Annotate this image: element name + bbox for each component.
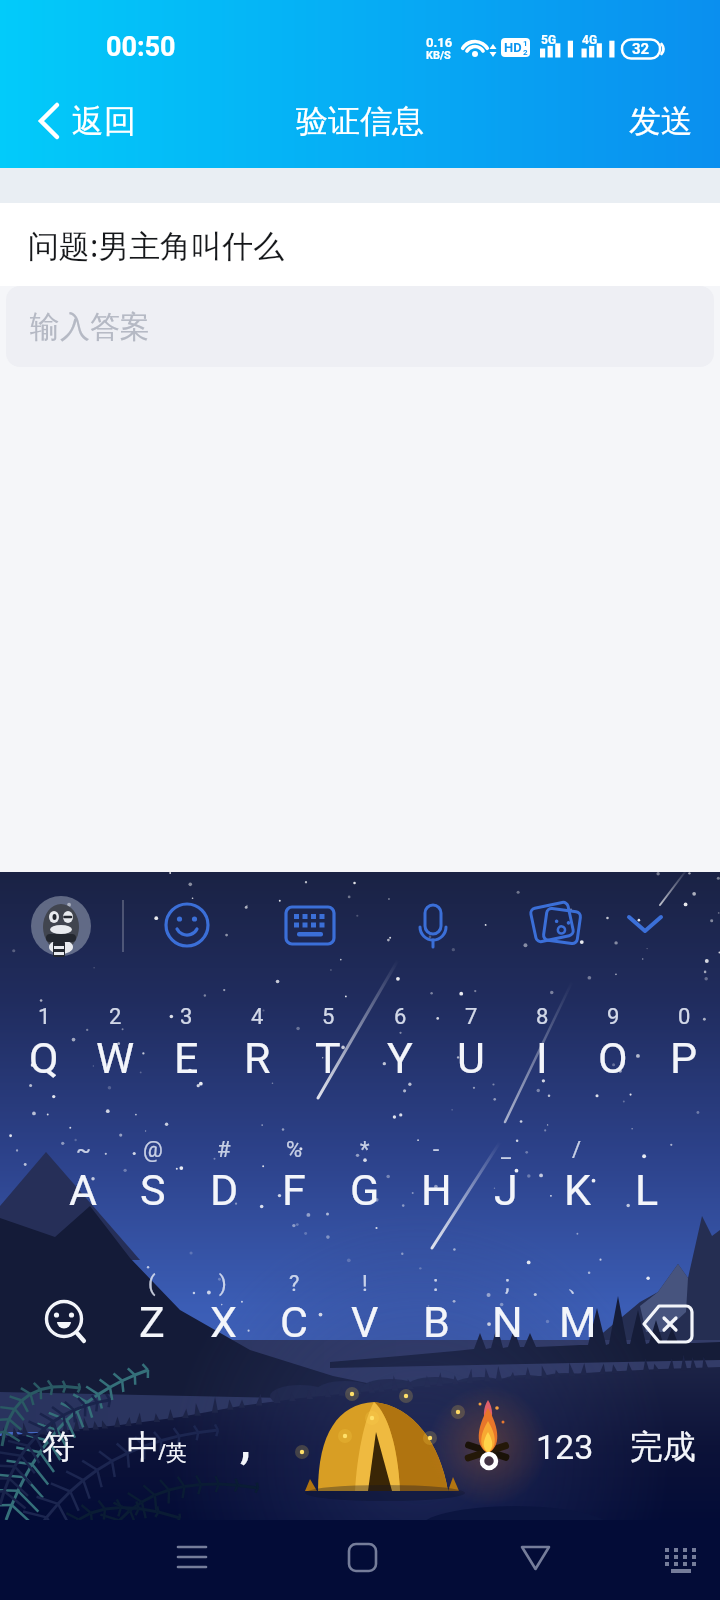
staticText: 3 [180, 1004, 193, 1030]
button[interactable] [26, 1288, 100, 1358]
button[interactable] [288, 1412, 518, 1484]
button[interactable]: F [259, 1154, 329, 1226]
staticText: 输入答案 [30, 308, 150, 346]
staticText: D [210, 1165, 239, 1215]
staticText: - [433, 1137, 440, 1163]
button[interactable]: O [578, 1022, 648, 1094]
button[interactable] [632, 1288, 706, 1358]
staticText: 7 [465, 1004, 478, 1030]
staticText: 5G [541, 33, 557, 47]
button[interactable] [28, 893, 94, 959]
button[interactable]: X [188, 1286, 258, 1358]
button[interactable]: D [189, 1154, 259, 1226]
button[interactable] [332, 1527, 392, 1587]
staticText: G [350, 1165, 380, 1215]
button[interactable]: H [401, 1154, 471, 1226]
staticText: Q [29, 1033, 59, 1083]
staticText: P [670, 1033, 698, 1083]
staticText: 0.16 [426, 35, 453, 50]
button[interactable] [612, 893, 678, 959]
button[interactable]: S [118, 1154, 188, 1226]
staticText: 1 [523, 39, 528, 48]
staticText: 00:50 [106, 31, 176, 63]
staticText: H [421, 1165, 452, 1215]
button[interactable]: 发送 [606, 93, 716, 149]
staticText: ; [505, 1271, 510, 1297]
staticText: 2 [109, 1004, 122, 1030]
button[interactable] [651, 1527, 711, 1587]
button[interactable]: 中 [113, 1411, 173, 1483]
button[interactable]: U [436, 1022, 506, 1094]
button[interactable] [154, 893, 220, 959]
staticText: 完成 [630, 1426, 696, 1468]
button[interactable]: /英 [150, 1416, 194, 1488]
staticText: X [210, 1297, 237, 1347]
staticText: _ [501, 1137, 511, 1163]
staticText: /英 [158, 1438, 187, 1467]
staticText: I [536, 1033, 548, 1083]
staticText: @ [143, 1137, 163, 1163]
staticText: W [96, 1033, 135, 1083]
button[interactable]: M [543, 1286, 613, 1358]
button[interactable]: K [542, 1154, 612, 1226]
button[interactable]: E [151, 1022, 221, 1094]
button[interactable]: P [649, 1022, 719, 1094]
button[interactable]: Q [9, 1022, 79, 1094]
button[interactable] [162, 1527, 222, 1587]
button[interactable]: Z [117, 1286, 187, 1358]
button[interactable]: A [48, 1154, 118, 1226]
button[interactable]: I [507, 1022, 577, 1094]
staticText: Z [139, 1297, 165, 1347]
staticText: # [217, 1137, 231, 1163]
button[interactable]: N [472, 1286, 542, 1358]
staticText: 返回 [72, 101, 136, 141]
button[interactable]: G [330, 1154, 400, 1226]
staticText: 、 [567, 1270, 589, 1298]
button[interactable] [277, 893, 343, 959]
staticText: O [598, 1033, 628, 1083]
staticText: 4 [251, 1004, 264, 1030]
staticText: , [240, 1413, 251, 1469]
button[interactable]: 123 [525, 1411, 605, 1483]
button[interactable]: , [213, 1405, 277, 1477]
button[interactable]: W [80, 1022, 150, 1094]
staticText: % [286, 1137, 303, 1163]
button[interactable] [524, 893, 590, 959]
staticText: B [423, 1297, 450, 1347]
button[interactable]: 输入答案 [6, 286, 714, 367]
staticText: HD [504, 40, 522, 55]
staticText: 5 [322, 1004, 335, 1030]
button[interactable]: L [612, 1154, 682, 1226]
staticText: 6 [394, 1004, 407, 1030]
button[interactable]: 完成 [620, 1411, 706, 1483]
staticText: L [635, 1165, 659, 1215]
staticText: KB/S [426, 49, 451, 62]
staticText: 符 [42, 1426, 75, 1468]
button[interactable]: V [330, 1286, 400, 1358]
staticText: 4G [582, 33, 598, 47]
staticText: 1 [38, 1004, 51, 1030]
staticText: * [360, 1137, 370, 1163]
staticText: A [69, 1165, 98, 1215]
staticText: ? [289, 1271, 300, 1297]
staticText: ! [362, 1271, 368, 1297]
staticText: J [494, 1165, 518, 1215]
button[interactable]: T [293, 1022, 363, 1094]
staticText: V [351, 1297, 379, 1347]
staticText: ~ [76, 1137, 91, 1163]
staticText: Y [387, 1033, 413, 1083]
button[interactable] [505, 1527, 565, 1587]
staticText: N [492, 1297, 523, 1347]
button[interactable]: C [259, 1286, 329, 1358]
button[interactable]: R [222, 1022, 292, 1094]
button[interactable] [400, 893, 466, 959]
staticText: 9 [607, 1004, 620, 1030]
button[interactable]: 符 [17, 1411, 99, 1483]
button[interactable]: J [471, 1154, 541, 1226]
staticText: F [282, 1165, 306, 1215]
staticText: 中 [127, 1426, 160, 1468]
button[interactable]: 返回 [24, 96, 136, 146]
button[interactable]: B [401, 1286, 471, 1358]
button[interactable]: Y [365, 1022, 435, 1094]
staticText: T [315, 1033, 341, 1083]
